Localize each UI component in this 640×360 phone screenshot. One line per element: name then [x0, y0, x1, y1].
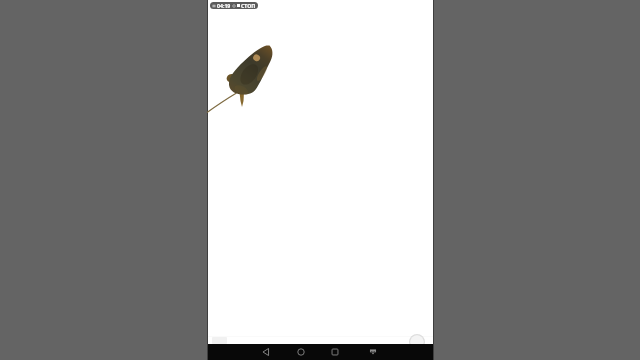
staticText: СТОП	[241, 2, 256, 9]
button[interactable]: Hide keyboard	[365, 344, 381, 360]
button[interactable]: Home	[293, 344, 309, 360]
staticText: 04:19	[217, 2, 231, 9]
button[interactable]: 04:19	[210, 2, 258, 9]
button[interactable]: Add	[409, 334, 425, 350]
button[interactable]: Recent apps	[327, 344, 343, 360]
button[interactable]: Back	[258, 344, 274, 360]
